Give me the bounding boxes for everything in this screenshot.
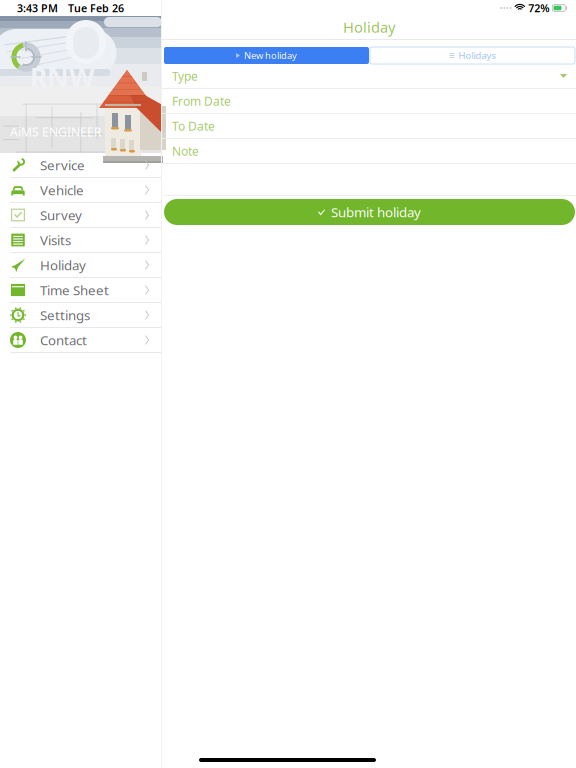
button[interactable]: Time Sheet — [0, 278, 161, 303]
staticText: AiMS ENGINEER — [10, 124, 101, 140]
button[interactable]: Service — [0, 153, 161, 178]
button[interactable]: Contact — [0, 328, 161, 353]
staticText: 3:43 PM — [17, 1, 58, 15]
staticText: Type — [172, 68, 198, 84]
button[interactable]: Type — [162, 64, 576, 89]
button[interactable]: Holidays — [370, 47, 575, 64]
staticText: Holiday — [343, 17, 395, 37]
staticText: Settings — [40, 306, 90, 324]
staticText: Holidays — [458, 49, 495, 62]
staticText: Submit holiday — [331, 203, 421, 221]
staticText: Survey — [40, 206, 82, 224]
staticText: From Date — [172, 93, 231, 109]
staticText: Vehicle — [40, 181, 84, 199]
button[interactable]: Note — [162, 139, 576, 164]
staticText: 72% — [528, 1, 549, 15]
staticText: Time Sheet — [40, 281, 109, 299]
button[interactable]: Settings — [0, 303, 161, 328]
button[interactable]: Survey — [0, 203, 161, 228]
staticText: RNW — [30, 59, 95, 94]
button[interactable]: New holiday — [164, 47, 369, 64]
staticText: Visits — [40, 231, 71, 249]
button[interactable]: Submit holiday — [164, 199, 575, 225]
staticText: New holiday — [244, 49, 297, 62]
button[interactable]: Vehicle — [0, 178, 161, 203]
staticText: Holiday — [40, 256, 86, 274]
staticText: Service — [40, 156, 85, 174]
staticText: To Date — [172, 118, 215, 134]
staticText: Contact — [40, 331, 87, 349]
button[interactable]: Holiday — [0, 253, 161, 278]
staticText: Note — [172, 143, 199, 159]
button[interactable]: To Date — [162, 114, 576, 139]
staticText: Tue Feb 26 — [68, 1, 124, 15]
button[interactable]: Visits — [0, 228, 161, 253]
button[interactable]: From Date — [162, 89, 576, 114]
